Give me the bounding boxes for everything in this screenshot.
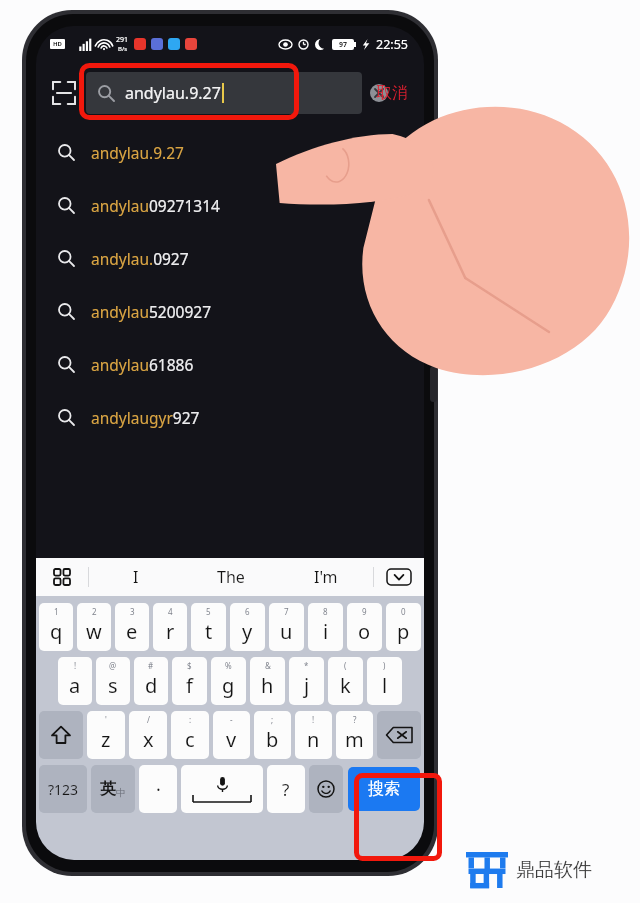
staticText: andylaugyr927 <box>91 407 200 428</box>
button[interactable]: * <box>289 657 324 705</box>
button[interactable]: 9 <box>347 603 382 651</box>
button[interactable]: # <box>134 657 168 705</box>
staticText: 7 <box>284 606 289 617</box>
staticText: y <box>242 618 253 645</box>
staticText: p <box>397 618 410 645</box>
button[interactable]: andylau.9.27 <box>86 72 362 114</box>
staticText: 97 <box>339 40 348 50</box>
staticText: andylau5200927 <box>91 301 212 322</box>
button[interactable]: Emoji <box>309 765 343 813</box>
staticText: 291 <box>116 35 129 45</box>
staticText: ; <box>271 714 274 725</box>
staticText: 22:55 <box>376 36 408 53</box>
staticText: andylau09271314 <box>91 195 220 216</box>
staticText: 8 <box>323 606 328 617</box>
staticText: ?123 <box>48 780 79 799</box>
button[interactable]: Collapse keyboard <box>374 558 424 596</box>
button[interactable]: Backspace <box>377 711 421 759</box>
staticText: & <box>265 660 271 671</box>
staticText: 6 <box>245 606 250 617</box>
staticText: u <box>280 618 293 645</box>
button[interactable]: ) <box>367 657 402 705</box>
button[interactable]: Numbers <box>39 765 87 813</box>
staticText: ( <box>344 660 347 671</box>
button[interactable]: 搜索 <box>348 767 420 811</box>
staticText: e <box>126 618 138 645</box>
button[interactable]: ; <box>254 711 291 759</box>
staticText: j <box>304 672 310 699</box>
button[interactable]: 取消 <box>368 77 416 109</box>
button[interactable]: andylau09271314 <box>36 179 424 232</box>
button[interactable]: andylau61886 <box>36 338 424 391</box>
staticText: ) <box>383 660 386 671</box>
button[interactable]: & <box>250 657 285 705</box>
button[interactable]: 6 <box>230 603 265 651</box>
button[interactable]: $ <box>172 657 207 705</box>
staticText: ! <box>74 660 77 671</box>
button[interactable]: ( <box>328 657 363 705</box>
button[interactable]: 7 <box>269 603 304 651</box>
staticText: I <box>133 566 139 588</box>
button[interactable]: 5 <box>191 603 226 651</box>
staticText: b <box>266 726 279 753</box>
button[interactable]: Clear <box>366 80 392 106</box>
button[interactable]: 4 <box>153 603 187 651</box>
button[interactable]: andylau.9.27 <box>36 126 424 179</box>
button[interactable]: % <box>211 657 246 705</box>
staticText: B/s <box>118 45 128 53</box>
button[interactable]: I'm <box>278 558 373 596</box>
button[interactable]: Menu <box>36 558 88 596</box>
staticText: 2 <box>92 606 97 617</box>
button[interactable]: The <box>183 558 278 596</box>
staticText: 鼎品软件 <box>516 858 592 882</box>
staticText: # <box>148 660 154 671</box>
staticText: I'm <box>314 566 338 588</box>
staticText: z <box>101 726 111 753</box>
staticText: 中 <box>116 786 126 799</box>
button[interactable]: - <box>213 711 250 759</box>
button[interactable]: andylaugyr927 <box>36 391 424 444</box>
button[interactable]: ? <box>336 711 373 759</box>
staticText: andylau.9.27 <box>91 142 184 163</box>
button[interactable]: ! <box>295 711 332 759</box>
staticText: The <box>217 566 245 588</box>
button[interactable]: I <box>89 558 183 596</box>
staticText: 4 <box>168 606 173 617</box>
staticText: HD <box>53 40 62 48</box>
button[interactable]: 8 <box>308 603 343 651</box>
staticText: t <box>205 618 213 645</box>
staticText: 1 <box>54 606 59 617</box>
button[interactable]: 2 <box>77 603 111 651</box>
staticText: * <box>304 660 309 671</box>
button[interactable]: ? <box>267 765 305 813</box>
button[interactable]: Language <box>91 765 135 813</box>
staticText: ! <box>312 714 315 725</box>
button[interactable]: 3 <box>115 603 149 651</box>
button[interactable] <box>181 765 263 813</box>
staticText: ? <box>353 714 357 725</box>
staticText: @ <box>109 660 117 671</box>
button[interactable]: andylau5200927 <box>36 285 424 338</box>
staticText: m <box>345 726 364 753</box>
button[interactable]: : <box>171 711 209 759</box>
staticText: : <box>189 714 192 725</box>
staticText: ' <box>105 714 107 725</box>
staticText: d <box>145 672 158 699</box>
button[interactable]: Scan <box>44 73 84 113</box>
button[interactable]: ! <box>58 657 92 705</box>
staticText: $ <box>187 660 192 671</box>
button[interactable]: 1 <box>39 603 73 651</box>
button[interactable]: @ <box>96 657 130 705</box>
staticText: f <box>186 672 193 699</box>
button[interactable]: ' <box>87 711 125 759</box>
button[interactable]: / <box>129 711 167 759</box>
button[interactable]: 0 <box>386 603 421 651</box>
staticText: s <box>108 672 118 699</box>
button[interactable]: · <box>139 765 177 813</box>
staticText: ? <box>282 778 290 801</box>
staticText: 英 <box>100 779 116 799</box>
button[interactable]: andylau.0927 <box>36 232 424 285</box>
staticText: w <box>86 618 102 645</box>
button[interactable]: Shift <box>39 711 83 759</box>
staticText: q <box>50 618 63 645</box>
